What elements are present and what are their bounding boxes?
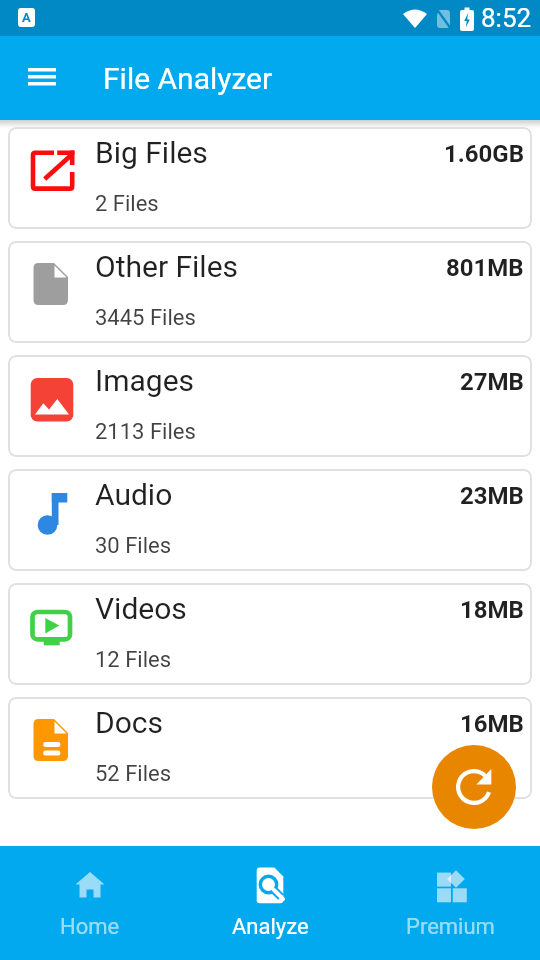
staticText: 8:52	[481, 3, 532, 33]
staticText: 27MB	[460, 368, 524, 396]
button[interactable]: Premium	[360, 846, 540, 960]
button[interactable]: Audio	[8, 469, 532, 571]
button[interactable]: Images	[8, 355, 532, 457]
button[interactable]	[28, 68, 56, 88]
button[interactable]: Big Files	[8, 127, 532, 229]
staticText: Analyze	[232, 914, 309, 940]
staticText: 1.60GB	[444, 140, 524, 168]
staticText: Home	[60, 914, 120, 940]
staticText: 2113 Files	[95, 419, 196, 445]
staticText: File Analyzer	[103, 61, 273, 96]
staticText: 3445 Files	[95, 305, 196, 331]
button[interactable]: Analyze	[180, 846, 360, 960]
staticText: 16MB	[460, 710, 524, 738]
staticText: 12 Files	[95, 647, 172, 673]
staticText: Audio	[95, 477, 173, 512]
staticText: 801MB	[446, 254, 524, 282]
button[interactable]: Other Files	[8, 241, 532, 343]
button[interactable]: Videos	[8, 583, 532, 685]
staticText: 18MB	[460, 596, 524, 624]
staticText: Other Files	[95, 249, 239, 284]
button[interactable]: Home	[0, 846, 180, 960]
staticText: Premium	[406, 914, 495, 940]
staticText: 30 Files	[95, 533, 172, 559]
staticText: Docs	[95, 705, 163, 740]
button[interactable]: Docs	[8, 697, 532, 799]
staticText: 23MB	[460, 482, 524, 510]
button[interactable]	[432, 745, 516, 829]
staticText: 52 Files	[95, 761, 172, 787]
staticText: Videos	[95, 591, 187, 626]
staticText: Big Files	[95, 135, 208, 170]
staticText: A	[22, 10, 31, 25]
staticText: Images	[95, 363, 195, 398]
staticText: 2 Files	[95, 191, 159, 217]
